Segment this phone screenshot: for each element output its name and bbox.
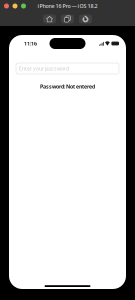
button[interactable]: Screenshot <box>61 14 74 23</box>
staticText: Password: Not entered <box>40 83 95 90</box>
button[interactable]: Home <box>43 14 56 23</box>
staticText: 11:16 <box>24 40 37 47</box>
button[interactable]: Rotate <box>79 14 92 23</box>
staticText: iPhone 16 Pro — iOS 18.2 <box>37 2 97 10</box>
staticText: Enter your password <box>19 65 69 72</box>
button[interactable]: Enter your password <box>16 63 119 74</box>
